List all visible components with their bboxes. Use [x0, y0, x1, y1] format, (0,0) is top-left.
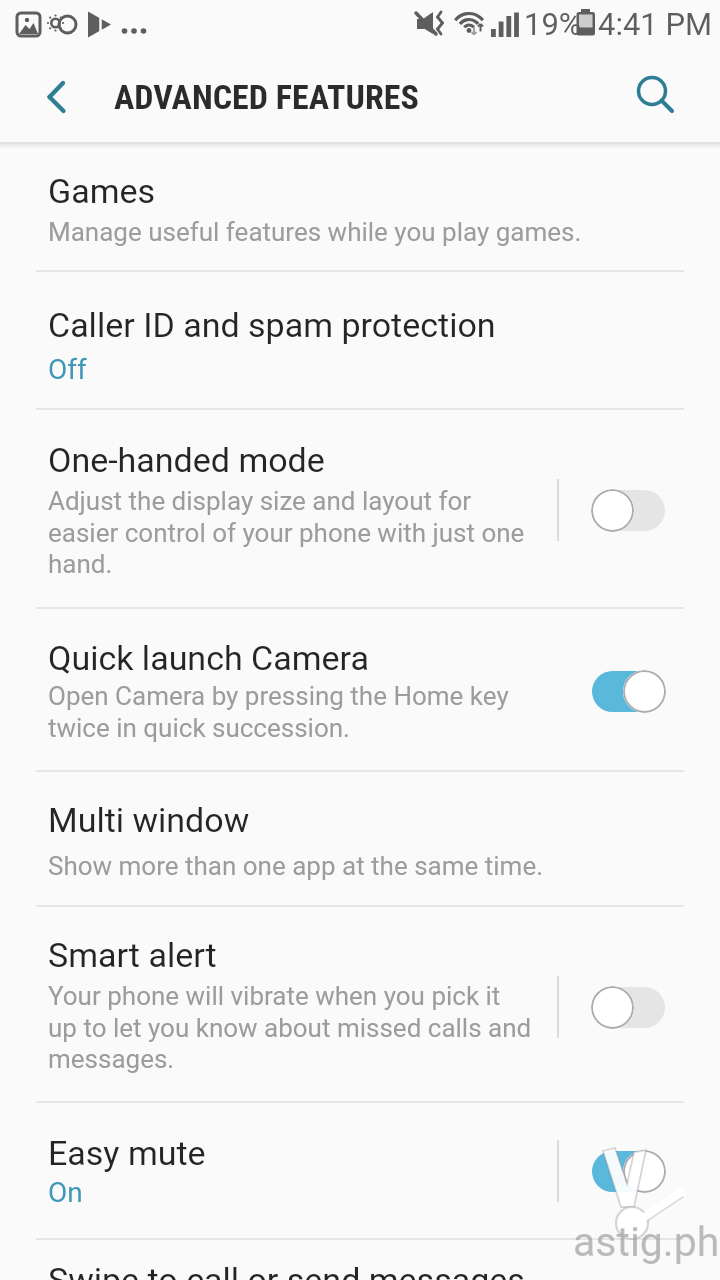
staticText: Off	[48, 353, 87, 386]
button[interactable]	[30, 73, 80, 119]
button[interactable]	[591, 986, 666, 1029]
button[interactable]	[591, 489, 666, 532]
staticText: Games	[48, 171, 156, 211]
staticText: Easy mute	[48, 1133, 206, 1173]
button[interactable]: Multi window	[0, 772, 720, 905]
staticText: On	[48, 1176, 83, 1209]
button[interactable]: Swipe to call or send messages	[0, 1240, 720, 1280]
staticText: Adjust the display size and layout for e…	[48, 486, 525, 579]
staticText: One-handed mode	[48, 440, 325, 480]
staticText: Smart alert	[48, 935, 217, 975]
staticText: Caller ID and spam protection	[48, 305, 496, 345]
button[interactable]: Caller ID and spam protection	[0, 272, 720, 408]
button[interactable]: Easy mute	[0, 1103, 720, 1238]
staticText: Swipe to call or send messages	[48, 1260, 525, 1280]
button[interactable]	[591, 1150, 666, 1193]
staticText: 4:41 PM	[598, 6, 713, 42]
button[interactable]: One-handed mode	[0, 410, 720, 607]
staticText: 19%	[524, 6, 582, 42]
button[interactable]	[591, 670, 666, 713]
staticText: Quick launch Camera	[48, 638, 369, 678]
staticText: Show more than one app at the same time.	[48, 851, 544, 881]
button[interactable]: Quick launch Camera	[0, 609, 720, 770]
staticText: Manage useful features while you play ga…	[48, 217, 582, 247]
staticText: astig.ph	[573, 1218, 720, 1266]
staticText: ADVANCED FEATURES	[114, 77, 419, 117]
button[interactable]	[622, 66, 682, 122]
staticText: Multi window	[48, 800, 250, 840]
button[interactable]: Games	[0, 144, 720, 270]
button[interactable]: Smart alert	[0, 907, 720, 1101]
staticText: Your phone will vibrate when you pick it…	[48, 981, 532, 1074]
staticText: Open Camera by pressing the Home key twi…	[48, 681, 509, 743]
